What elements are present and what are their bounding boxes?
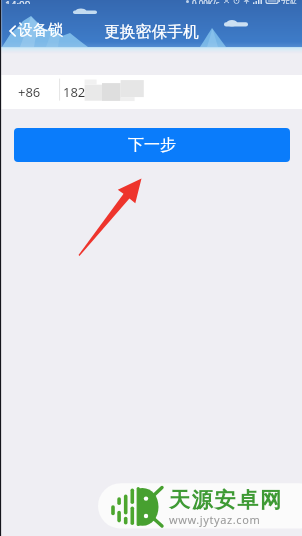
staticText: 75% — [281, 0, 297, 4]
button[interactable]: 下一步 — [14, 128, 290, 162]
staticText: 182 — [63, 83, 86, 101]
button[interactable]: Back to 设备锁 — [0, 15, 73, 46]
staticText: 更换密保手机 — [104, 22, 199, 42]
staticText: www.jytyaz.com — [169, 512, 261, 527]
staticText: 设备锁 — [18, 21, 63, 40]
staticText: 0.00K/s — [192, 0, 220, 4]
staticText: +86 — [18, 83, 41, 101]
button[interactable]: +86 — [0, 75, 302, 109]
staticText: 天源安卓网 — [168, 487, 282, 513]
staticText: 下一步 — [128, 135, 176, 155]
staticText: 14:09 — [5, 0, 31, 4]
